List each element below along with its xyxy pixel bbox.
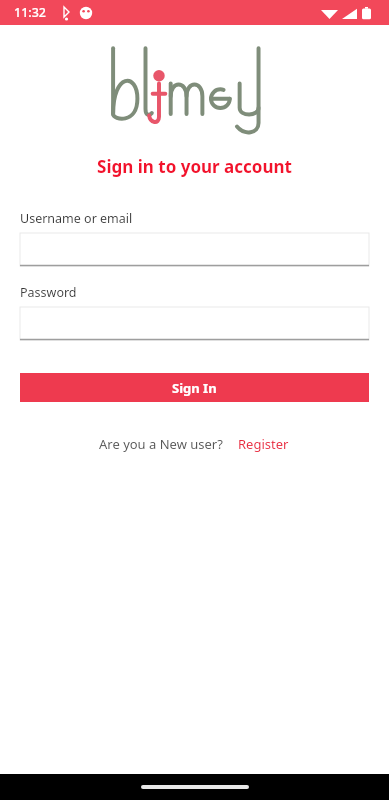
staticText: Are you a New user? (99, 435, 223, 453)
staticText: Username or email (20, 210, 133, 227)
staticText: Password (20, 284, 77, 301)
button[interactable]: Register (236, 433, 291, 455)
button[interactable]: Username or email input (20, 233, 369, 266)
staticText: Sign in to your account (0, 155, 389, 178)
button[interactable]: Sign In (20, 373, 369, 402)
button[interactable]: Password input (20, 307, 369, 340)
staticText: Sign In (172, 379, 217, 397)
staticText: Register (238, 435, 289, 453)
staticText: 11:32 (14, 4, 47, 21)
